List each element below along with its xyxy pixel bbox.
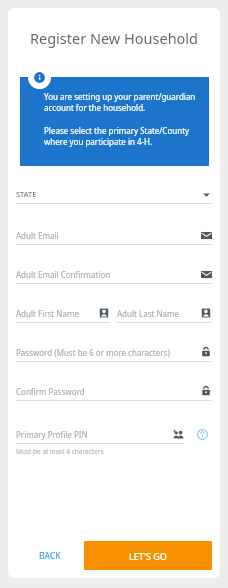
staticText: Password (Must be 6 or more characters) bbox=[16, 347, 200, 358]
staticText: Adult Last Name bbox=[117, 308, 200, 319]
staticText: Must be at least 4 characters bbox=[16, 447, 104, 456]
staticText: Please select the primary State/County w… bbox=[44, 125, 197, 148]
staticText: Adult Email Confirmation bbox=[16, 269, 200, 280]
button[interactable]: Confirm Password bbox=[16, 385, 212, 401]
staticText: Adult First Name bbox=[16, 308, 98, 319]
button[interactable]: LET'S GO bbox=[84, 541, 212, 570]
staticText: BACK bbox=[39, 550, 61, 562]
other: Information bbox=[28, 66, 51, 89]
button[interactable]: Adult Last Name bbox=[117, 307, 212, 323]
button[interactable]: Adult Email Confirmation bbox=[16, 268, 212, 284]
button[interactable]: Adult First Name bbox=[16, 307, 110, 323]
button[interactable]: BACK bbox=[16, 541, 84, 570]
button[interactable]: Adult Email bbox=[16, 229, 212, 245]
button[interactable]: Primary Profile PIN bbox=[16, 428, 184, 444]
staticText: You are setting up your parent/guardian … bbox=[44, 91, 197, 114]
staticText: Adult Email bbox=[16, 230, 200, 241]
staticText: Primary Profile PIN bbox=[16, 429, 172, 440]
button[interactable]: State bbox=[16, 188, 212, 204]
button[interactable]: Password bbox=[16, 346, 212, 362]
button[interactable]: Help about Primary Profile PIN bbox=[192, 424, 212, 444]
staticText: Register New Household bbox=[8, 28, 220, 48]
staticText: LET'S GO bbox=[129, 550, 167, 562]
staticText: STATE bbox=[16, 189, 200, 199]
staticText: Confirm Password bbox=[16, 386, 200, 397]
